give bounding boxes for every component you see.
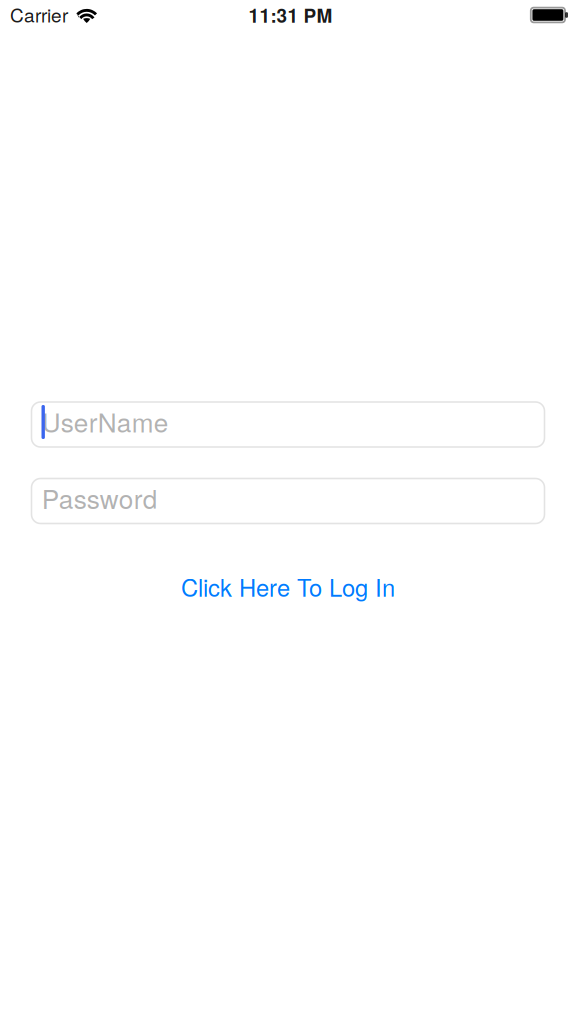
staticText: UserName xyxy=(42,403,169,440)
button[interactable]: UserName xyxy=(31,402,544,447)
staticText: Password xyxy=(42,479,158,516)
staticText: Carrier xyxy=(10,0,68,28)
staticText: 11:31 PM xyxy=(248,1,332,28)
staticText: Click Here To Log In xyxy=(181,569,395,603)
button[interactable]: Password xyxy=(31,478,544,523)
button[interactable]: Click Here To Log In xyxy=(31,569,544,603)
